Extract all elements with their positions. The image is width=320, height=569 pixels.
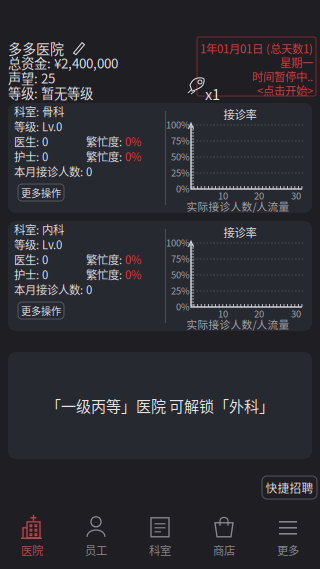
button[interactable]: 1年01月01日 (总天数1): [197, 37, 316, 96]
staticText: 25%: [171, 284, 190, 297]
staticText: 科室: [149, 542, 171, 558]
staticText: 护士: 0: [14, 266, 48, 282]
staticText: 10: [218, 189, 228, 202]
button[interactable]: 更多操作: [18, 184, 64, 201]
staticText: 更多操作: [21, 185, 61, 200]
staticText: 科室: 骨科: [14, 103, 64, 119]
button[interactable]: 科室: [128, 513, 192, 559]
staticText: 繁忙度:: [86, 266, 125, 282]
staticText: 0%: [125, 148, 141, 164]
staticText: 更多: [277, 542, 299, 558]
staticText: 时间暂停中..: [252, 68, 313, 84]
staticText: 75%: [171, 252, 190, 265]
staticText: 员工: [85, 542, 107, 558]
staticText: 20: [254, 307, 264, 320]
staticText: 25%: [171, 166, 190, 179]
staticText: 等级: 暂无等级: [8, 83, 93, 102]
staticText: 医生: 0: [14, 251, 48, 267]
staticText: 0%: [125, 133, 141, 149]
button[interactable]: 更多: [256, 513, 320, 559]
staticText: 75%: [171, 134, 190, 147]
button[interactable]: 医院: [0, 513, 64, 559]
staticText: 繁忙度:: [86, 251, 125, 267]
staticText: 声望: 25: [8, 68, 55, 87]
staticText: 星期一: [280, 54, 313, 70]
staticText: 0%: [125, 266, 141, 282]
staticText: 实际接诊人数/人流量: [186, 198, 289, 214]
staticText: <点击开始>: [257, 82, 313, 98]
staticText: x1: [205, 83, 220, 104]
staticText: 医院: [21, 542, 43, 558]
staticText: 护士: 0: [14, 148, 48, 164]
staticText: 繁忙度:: [86, 148, 125, 164]
staticText: 商店: [213, 542, 235, 558]
staticText: 1年01月01日 (总天数1): [200, 40, 313, 56]
staticText: 等级: Lv.0: [14, 236, 62, 252]
button[interactable]: 员工: [64, 513, 128, 559]
button[interactable]: 更多操作: [18, 302, 64, 319]
staticText: 0%: [176, 300, 190, 313]
staticText: 「一级丙等」医院 可解锁「外科」: [46, 395, 274, 416]
staticText: 多多医院: [8, 38, 64, 58]
staticText: 本月接诊人数: 0: [14, 281, 92, 297]
button[interactable]: Game speed: [186, 74, 226, 98]
staticText: 等级: Lv.0: [14, 118, 62, 134]
staticText: 实际接诊人数/人流量: [186, 316, 289, 332]
staticText: 接诊率: [223, 106, 256, 122]
button[interactable]: 快捷招聘: [262, 476, 317, 499]
staticText: 科室: 内科: [14, 221, 64, 237]
staticText: 100%: [166, 118, 190, 131]
button[interactable]: 商店: [192, 513, 256, 559]
staticText: 本月接诊人数: 0: [14, 163, 92, 179]
staticText: 0%: [176, 182, 190, 195]
staticText: 30: [291, 189, 301, 202]
staticText: 30: [291, 307, 301, 320]
staticText: 20: [254, 189, 264, 202]
staticText: 50%: [171, 150, 190, 163]
staticText: 接诊率: [223, 224, 256, 240]
staticText: 更多操作: [21, 303, 61, 318]
staticText: 100%: [166, 236, 190, 249]
staticText: 快捷招聘: [265, 479, 313, 496]
staticText: 总资金: ¥2,400,000: [8, 53, 118, 72]
staticText: 医生: 0: [14, 133, 48, 149]
staticText: 0%: [125, 251, 141, 267]
staticText: 50%: [171, 268, 190, 281]
staticText: 10: [218, 307, 228, 320]
staticText: 繁忙度:: [86, 133, 125, 149]
